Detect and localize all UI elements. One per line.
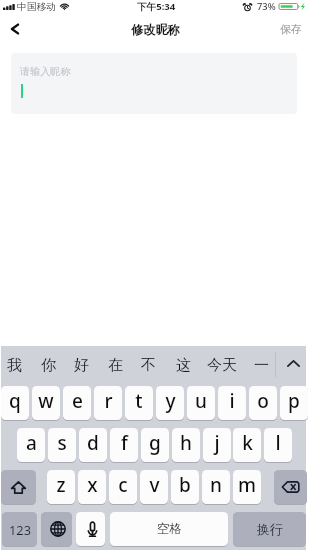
button[interactable]: u: [187, 386, 215, 420]
button[interactable]: v: [140, 470, 168, 504]
staticText: q: [9, 388, 21, 414]
staticText: v: [149, 472, 160, 498]
staticText: 一: [254, 356, 269, 375]
button[interactable]: m: [233, 470, 261, 504]
staticText: 修改昵称: [131, 22, 180, 37]
staticText: 请输入昵称: [20, 65, 71, 78]
button[interactable]: 一: [248, 346, 274, 386]
button[interactable]: g: [141, 428, 169, 462]
button[interactable]: Switch keyboard language: [41, 512, 72, 546]
staticText: t: [135, 388, 143, 414]
button[interactable]: 保存: [272, 15, 310, 44]
button[interactable]: o: [249, 386, 277, 420]
button[interactable]: h: [172, 428, 200, 462]
button[interactable]: Shift: [1, 470, 36, 504]
button[interactable]: l: [264, 428, 292, 462]
staticText: z: [56, 472, 66, 498]
staticText: 好: [74, 356, 89, 375]
staticText: l: [275, 430, 281, 456]
button[interactable]: 空格: [110, 512, 228, 546]
staticText: s: [57, 430, 67, 456]
staticText: b: [179, 472, 191, 498]
staticText: 这: [176, 356, 191, 375]
staticText: x: [87, 472, 98, 498]
staticText: d: [87, 430, 99, 456]
staticText: 你: [41, 356, 56, 375]
button[interactable]: q: [1, 386, 29, 420]
staticText: c: [118, 472, 128, 498]
button[interactable]: j: [203, 428, 231, 462]
staticText: a: [26, 430, 37, 456]
button[interactable]: z: [47, 470, 75, 504]
staticText: u: [195, 388, 207, 414]
button[interactable]: Expand candidates: [276, 346, 310, 386]
staticText: 下午5:34: [137, 0, 176, 13]
staticText: 在: [108, 356, 123, 375]
staticText: m: [238, 472, 256, 498]
staticText: k: [242, 430, 253, 456]
staticText: r: [104, 388, 113, 414]
button[interactable]: w: [32, 386, 60, 420]
staticText: p: [288, 388, 300, 414]
button[interactable]: Voice input: [76, 512, 105, 546]
button[interactable]: 换行: [233, 512, 306, 546]
button[interactable]: 今天: [205, 346, 239, 386]
button[interactable]: f: [110, 428, 138, 462]
button[interactable]: 在: [102, 346, 128, 386]
button[interactable]: i: [218, 386, 246, 420]
button[interactable]: p: [280, 386, 308, 420]
button[interactable]: a: [17, 428, 45, 462]
button[interactable]: d: [79, 428, 107, 462]
button[interactable]: e: [63, 386, 91, 420]
button[interactable]: y: [156, 386, 184, 420]
button[interactable]: 不: [135, 346, 161, 386]
staticText: y: [165, 388, 176, 414]
staticText: 中国移动: [17, 1, 56, 13]
staticText: 123: [9, 521, 31, 538]
staticText: 今天: [207, 356, 237, 375]
staticText: 不: [141, 356, 156, 375]
staticText: e: [72, 388, 83, 414]
staticText: 73%: [257, 0, 276, 13]
staticText: n: [210, 472, 222, 498]
button[interactable]: 123: [2, 512, 37, 546]
staticText: o: [257, 388, 269, 414]
button[interactable]: 请输入昵称: [11, 53, 297, 114]
button[interactable]: k: [233, 428, 261, 462]
button[interactable]: c: [109, 470, 137, 504]
staticText: i: [229, 388, 235, 414]
button[interactable]: n: [202, 470, 230, 504]
button[interactable]: 我: [1, 346, 27, 386]
staticText: w: [38, 388, 54, 414]
button[interactable]: s: [48, 428, 76, 462]
button[interactable]: r: [94, 386, 122, 420]
staticText: 我: [7, 356, 22, 375]
staticText: h: [180, 430, 192, 456]
button[interactable]: 好: [68, 346, 94, 386]
button[interactable]: b: [171, 470, 199, 504]
button[interactable]: 这: [170, 346, 196, 386]
staticText: 保存: [280, 23, 302, 37]
button[interactable]: Back: [0, 15, 32, 44]
staticText: 换行: [257, 521, 283, 537]
staticText: f: [121, 430, 128, 456]
staticText: j: [214, 430, 220, 456]
button[interactable]: t: [125, 386, 153, 420]
button[interactable]: x: [78, 470, 106, 504]
staticText: g: [149, 430, 161, 456]
button[interactable]: Backspace: [274, 470, 307, 504]
staticText: 空格: [157, 521, 182, 537]
button[interactable]: 你: [35, 346, 61, 386]
